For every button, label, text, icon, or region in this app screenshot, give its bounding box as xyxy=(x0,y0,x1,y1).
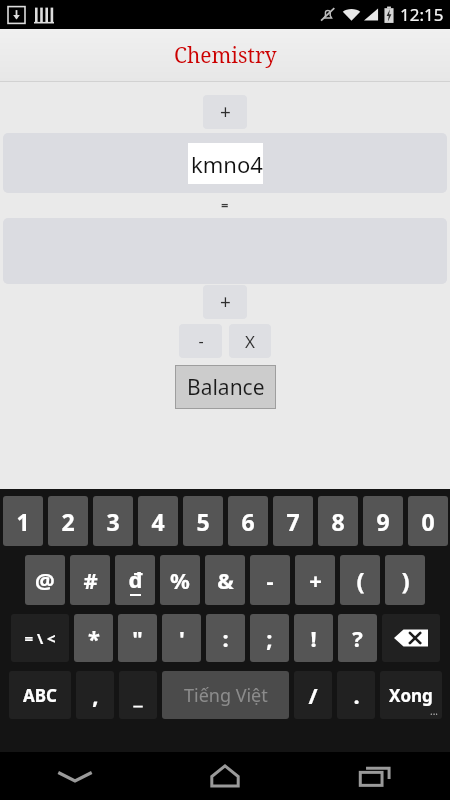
staticText: 5 xyxy=(196,506,210,537)
staticText: 8 xyxy=(331,506,345,537)
staticText: 7 xyxy=(286,506,300,537)
button[interactable]: ( xyxy=(340,555,380,605)
staticText: ABC xyxy=(23,684,57,707)
staticText: kmno4 xyxy=(191,149,263,179)
button[interactable]: Back xyxy=(0,752,150,800)
button[interactable]: 7 xyxy=(273,496,313,546)
button[interactable]: ) xyxy=(385,555,425,605)
button[interactable]: ABC xyxy=(9,671,71,719)
staticText: 6 xyxy=(241,506,255,537)
staticText: / xyxy=(308,680,318,710)
button[interactable]: # xyxy=(70,555,110,605)
staticText: - xyxy=(198,330,204,352)
button[interactable]: + xyxy=(203,95,247,129)
button[interactable]: & xyxy=(205,555,245,605)
button[interactable]: ? xyxy=(338,614,377,662)
staticText: Chemistry xyxy=(174,41,277,70)
button[interactable]: Home xyxy=(150,752,300,800)
staticText: X xyxy=(245,330,255,353)
button[interactable]: Balance xyxy=(176,366,275,408)
button[interactable]: Xong xyxy=(380,671,442,719)
button[interactable]: + xyxy=(295,555,335,605)
button[interactable]: 2 xyxy=(48,496,88,546)
button[interactable]: 0 xyxy=(408,496,448,546)
staticText: * xyxy=(88,623,100,653)
staticText: + xyxy=(309,565,322,595)
staticText: ) xyxy=(401,564,410,597)
staticText: ? xyxy=(352,623,363,653)
staticText: 1 xyxy=(16,506,30,537)
button[interactable]: đ xyxy=(115,555,155,605)
staticText: , xyxy=(92,680,99,710)
staticText: # xyxy=(83,565,98,595)
button[interactable]: 8 xyxy=(318,496,358,546)
button[interactable]: * xyxy=(74,614,113,662)
button[interactable]: " xyxy=(118,614,157,662)
staticText: ! xyxy=(310,623,317,653)
button[interactable]: ' xyxy=(162,614,201,662)
staticText: 9 xyxy=(376,506,390,537)
staticText: = xyxy=(221,196,229,214)
staticText: + xyxy=(220,289,231,315)
staticText: @ xyxy=(35,565,55,595)
staticText: + xyxy=(220,99,231,125)
button[interactable]: @ xyxy=(25,555,65,605)
button[interactable]: Backspace xyxy=(382,614,440,662)
staticText: _ xyxy=(133,680,143,710)
staticText: = \ < xyxy=(24,628,56,648)
button[interactable]: Tiếng Việt xyxy=(162,671,289,719)
staticText: ... xyxy=(430,704,439,718)
staticText: Balance xyxy=(187,373,265,402)
button[interactable]: X xyxy=(229,324,271,358)
staticText: ( xyxy=(356,564,365,597)
staticText: " xyxy=(132,623,143,653)
staticText: : xyxy=(222,623,229,653)
button[interactable]: ; xyxy=(250,614,289,662)
button[interactable]: Recent apps xyxy=(300,752,450,800)
staticText: 0 xyxy=(421,506,435,537)
button[interactable]: ! xyxy=(294,614,333,662)
staticText: ; xyxy=(266,623,273,653)
button[interactable]: 3 xyxy=(93,496,133,546)
button[interactable]: 1 xyxy=(3,496,43,546)
button[interactable]: 5 xyxy=(183,496,223,546)
staticText: ' xyxy=(179,623,185,653)
button[interactable]: % xyxy=(160,555,200,605)
button[interactable]: . xyxy=(337,671,375,719)
button[interactable]: 9 xyxy=(363,496,403,546)
button[interactable]: - xyxy=(250,555,290,605)
staticText: & xyxy=(217,565,234,595)
button[interactable]: = \ < xyxy=(11,614,69,662)
staticText: . xyxy=(353,680,360,710)
staticText: % xyxy=(170,565,190,595)
button[interactable]: : xyxy=(206,614,245,662)
button[interactable]: + xyxy=(203,285,247,319)
button[interactable]: 4 xyxy=(138,496,178,546)
button[interactable]: 6 xyxy=(228,496,268,546)
staticText: - xyxy=(266,565,274,595)
button[interactable]: / xyxy=(294,671,332,719)
staticText: đ xyxy=(128,564,143,594)
button[interactable]: , xyxy=(76,671,114,719)
staticText: 12:15 xyxy=(400,3,444,26)
button[interactable]: kmno4 xyxy=(188,143,263,184)
button[interactable]: - xyxy=(179,324,222,358)
staticText: 2 xyxy=(61,506,75,537)
staticText: 4 xyxy=(151,506,165,537)
button[interactable]: _ xyxy=(119,671,157,719)
staticText: 3 xyxy=(106,506,120,537)
staticText: Tiếng Việt xyxy=(184,683,268,708)
staticText: Xong xyxy=(389,684,433,707)
